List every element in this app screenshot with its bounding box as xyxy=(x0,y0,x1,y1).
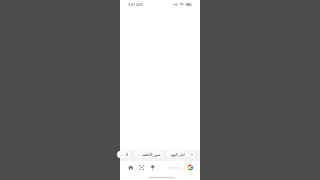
button[interactable]: Voice search xyxy=(147,161,158,174)
staticText: 9:41 AM xyxy=(128,2,143,7)
staticText: الصور xyxy=(121,152,127,157)
staticText: صور الأطعمة الشهيّة xyxy=(138,152,160,157)
button[interactable]: Lens xyxy=(136,161,147,174)
button[interactable]: صور الأطعمة الشهيّة xyxy=(134,151,164,158)
staticText: بحث Google xyxy=(168,166,186,169)
button[interactable]: More options xyxy=(189,151,195,158)
button[interactable]: الصور xyxy=(117,151,131,158)
button[interactable]: Home xyxy=(125,161,136,174)
button[interactable]: أخبار اليوم xyxy=(166,151,189,158)
staticText: أخبار اليوم xyxy=(170,152,185,157)
button[interactable]: Google xyxy=(187,165,193,170)
